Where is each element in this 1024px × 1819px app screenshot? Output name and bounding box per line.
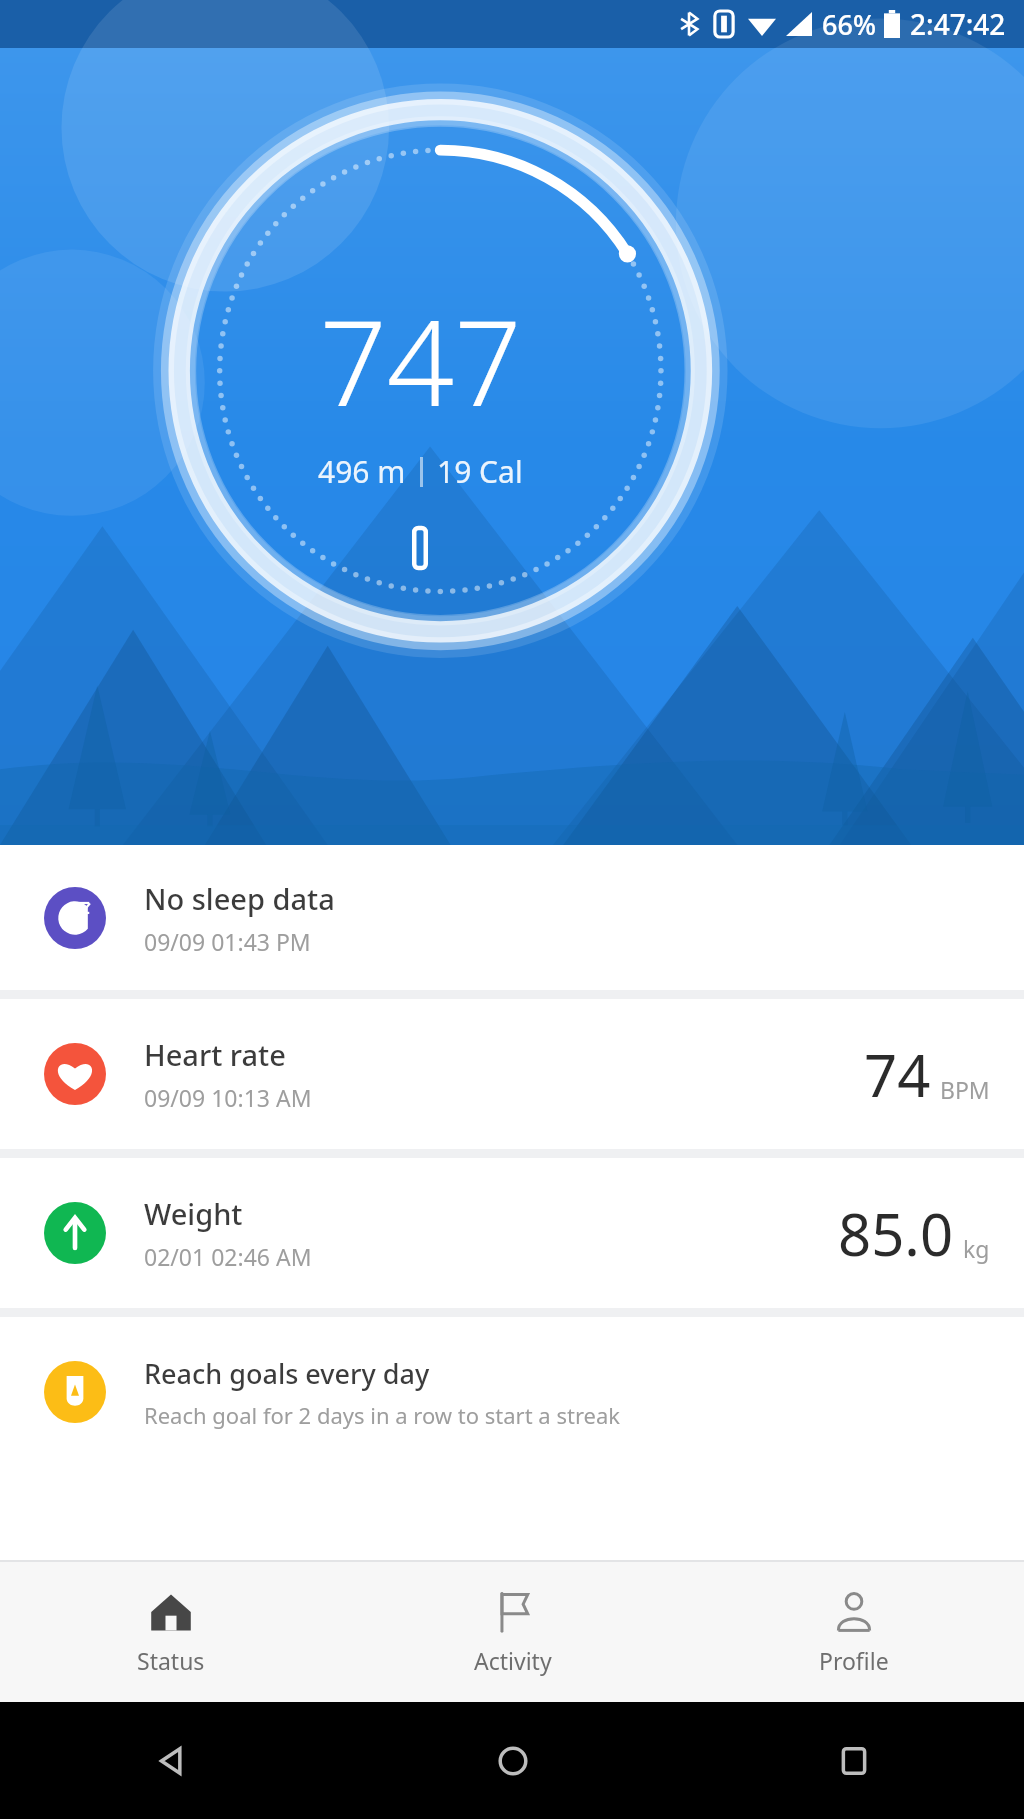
staticText: Reach goals every day [144,1355,430,1392]
button[interactable]: Activity [342,1562,683,1702]
staticText: Heart rate [144,1035,286,1074]
staticText: BPM [940,1074,990,1105]
staticText: 02/01 02:46 AM [144,1241,312,1272]
staticText: Status [137,1645,205,1676]
staticText: 09/09 10:13 AM [144,1082,312,1113]
button[interactable]: Status [0,1562,342,1702]
staticText: kg [963,1233,990,1264]
staticText: 74 [864,1035,931,1114]
staticText: Activity [474,1645,552,1676]
button[interactable]: Home [497,1745,529,1777]
button[interactable]: Heart rate [0,999,1024,1149]
button[interactable]: Weight [0,1158,1024,1308]
staticText: No sleep data [144,879,335,918]
staticText: Weight [144,1194,243,1233]
staticText: 496 m [318,451,406,492]
staticText: 09/09 01:43 PM [144,926,311,957]
staticText: 19 Cal [437,451,523,492]
button[interactable]: Profile [683,1562,1024,1702]
staticText: Profile [819,1645,889,1676]
staticText: 2:47:42 [910,5,1006,43]
staticText: Reach goal for 2 days in a row to start … [144,1400,621,1430]
button[interactable]: Back [154,1744,188,1778]
button[interactable]: Recents [840,1747,868,1775]
button[interactable]: No sleep data [0,845,1024,990]
staticText: 747 [319,280,522,441]
staticText: 66% [822,6,876,43]
staticText: 85.0 [838,1194,954,1273]
button[interactable]: Reach goals every day [0,1317,1024,1467]
